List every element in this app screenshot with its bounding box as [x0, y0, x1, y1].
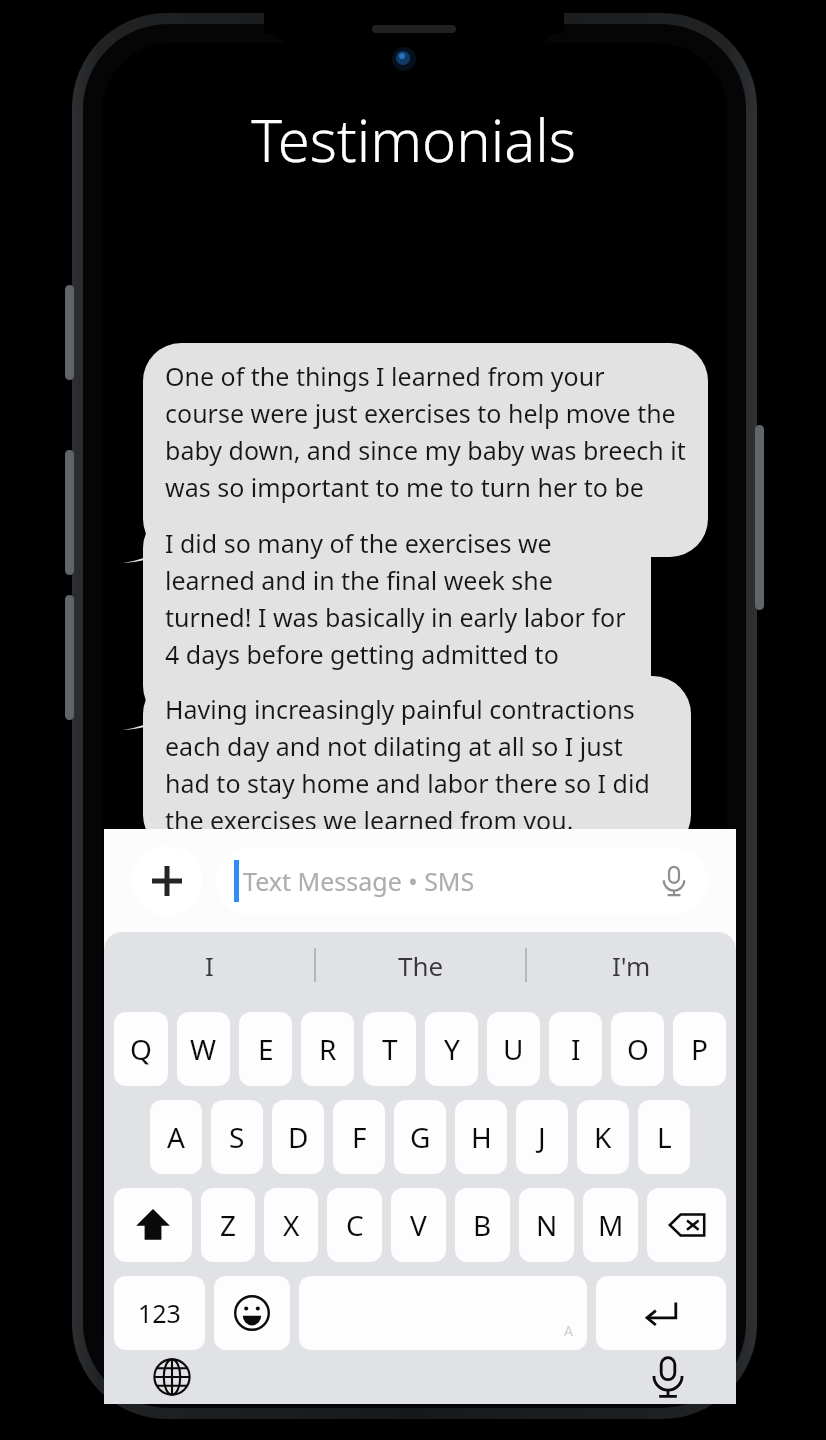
button[interactable]: Y — [425, 1012, 478, 1086]
button[interactable]: R — [301, 1012, 354, 1086]
staticText: D — [288, 1118, 309, 1156]
staticText: N — [536, 1206, 558, 1244]
button[interactable]: Shift — [114, 1188, 192, 1262]
staticText: A — [167, 1118, 185, 1156]
button[interactable]: 123 — [114, 1276, 205, 1350]
button[interactable]: B — [455, 1188, 510, 1262]
button[interactable]: Having increasingly painful contractions… — [143, 676, 691, 853]
staticText: C — [346, 1206, 364, 1244]
staticText: F — [352, 1118, 367, 1156]
staticText: L — [657, 1118, 672, 1156]
button[interactable]: F — [333, 1100, 385, 1174]
staticText: T — [382, 1030, 398, 1068]
button[interactable]: K — [577, 1100, 629, 1174]
button[interactable]: V — [391, 1188, 446, 1262]
staticText: X — [283, 1206, 300, 1244]
button[interactable]: T — [363, 1012, 416, 1086]
staticText: M — [598, 1206, 624, 1244]
staticText: Testimonials — [251, 100, 576, 179]
staticText: B — [473, 1206, 492, 1244]
button[interactable]: Add attachment — [132, 846, 202, 916]
button[interactable]: Return — [596, 1276, 726, 1350]
staticText: E — [258, 1030, 274, 1068]
button[interactable]: P — [673, 1012, 726, 1086]
button[interactable]: U — [487, 1012, 540, 1086]
button[interactable]: L — [638, 1100, 690, 1174]
button[interactable]: D — [272, 1100, 324, 1174]
staticText: The — [398, 948, 444, 983]
button[interactable]: The — [316, 932, 525, 998]
staticText: V — [410, 1206, 427, 1244]
staticText: O — [627, 1030, 649, 1068]
button[interactable]: Text Message • SMS — [216, 848, 708, 914]
staticText: H — [471, 1118, 492, 1156]
button[interactable]: A — [150, 1100, 202, 1174]
button[interactable]: X — [264, 1188, 318, 1262]
button[interactable]: Change keyboard — [146, 1351, 198, 1403]
button[interactable]: One of the things I learned from your co… — [143, 343, 708, 557]
button[interactable]: O — [611, 1012, 664, 1086]
staticText: I'm — [612, 948, 651, 983]
staticText: Y — [444, 1030, 460, 1068]
staticText: G — [410, 1118, 431, 1156]
staticText: Having increasingly painful contractions… — [165, 692, 669, 837]
staticText: U — [503, 1030, 524, 1068]
staticText: Q — [130, 1030, 152, 1068]
staticText: S — [229, 1118, 245, 1156]
staticText: K — [594, 1118, 612, 1156]
button[interactable]: J — [516, 1100, 568, 1174]
staticText: I — [205, 948, 214, 983]
button[interactable]: I — [549, 1012, 602, 1086]
staticText: 123 — [138, 1296, 181, 1330]
staticText: Text Message • SMS — [243, 864, 658, 898]
button[interactable]: W — [177, 1012, 230, 1086]
button[interactable]: M — [583, 1188, 638, 1262]
staticText: P — [691, 1030, 708, 1068]
button[interactable]: G — [394, 1100, 446, 1174]
staticText: One of the things I learned from your co… — [165, 359, 686, 541]
button[interactable]: Z — [201, 1188, 255, 1262]
button[interactable]: Q — [114, 1012, 168, 1086]
button[interactable]: I — [104, 932, 314, 998]
button[interactable]: S — [211, 1100, 263, 1174]
button[interactable]: Emoji — [214, 1276, 290, 1350]
button[interactable]: C — [327, 1188, 382, 1262]
button[interactable]: H — [455, 1100, 507, 1174]
staticText: W — [190, 1030, 217, 1068]
staticText: I — [571, 1030, 581, 1068]
button[interactable]: I did so many of the exercises we learne… — [143, 510, 651, 724]
staticText: A — [564, 1321, 573, 1340]
staticText: J — [538, 1118, 546, 1156]
button[interactable]: N — [519, 1188, 574, 1262]
button[interactable]: E — [239, 1012, 292, 1086]
button[interactable]: Dictate — [642, 1351, 694, 1403]
staticText: R — [319, 1030, 337, 1068]
staticText: Z — [220, 1206, 237, 1244]
staticText: I did so many of the exercises we learne… — [165, 526, 629, 708]
button[interactable]: I'm — [527, 932, 736, 998]
button[interactable]: Backspace — [647, 1188, 726, 1262]
